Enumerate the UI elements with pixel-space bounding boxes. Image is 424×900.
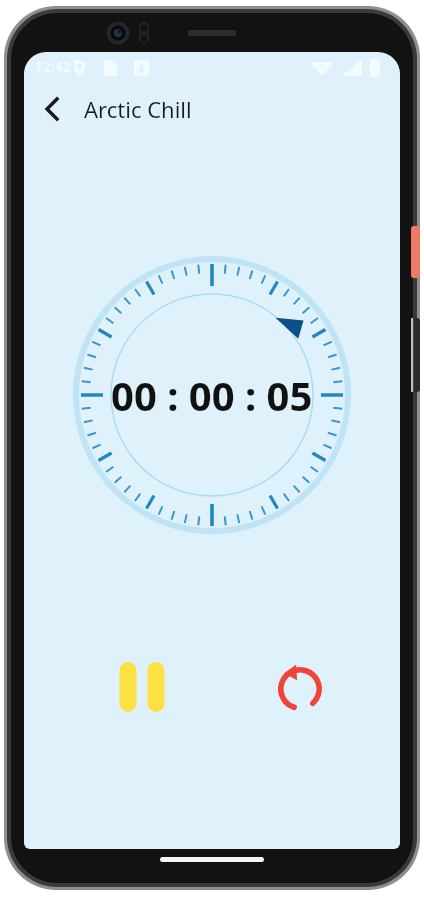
staticText: 12:42 — [35, 57, 71, 76]
staticText: 00 : 00 : 05 — [111, 368, 313, 422]
button[interactable]: Reset — [264, 651, 336, 723]
staticText: Arctic Chill — [84, 94, 192, 124]
button[interactable]: Pause — [106, 651, 178, 723]
button[interactable]: Back — [28, 85, 76, 133]
